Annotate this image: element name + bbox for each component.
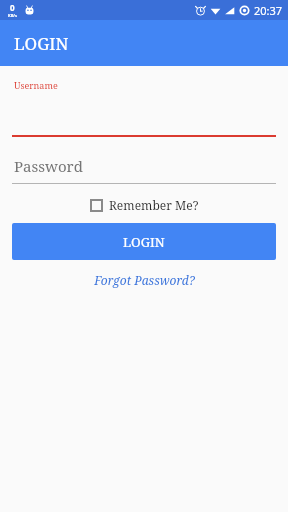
staticText: 20:37 [254,3,283,18]
staticText: Username [14,79,58,91]
staticText: Forgot Password? [94,272,195,288]
staticText: LOGIN [123,233,165,251]
staticText: LOGIN [14,32,69,55]
button[interactable]: Remember Me? [90,197,199,213]
button[interactable]: Forgot Password? [90,268,199,292]
button[interactable] [12,111,276,137]
button[interactable]: LOGIN [12,223,276,260]
staticText: Password [14,156,83,176]
staticText: KB/s [8,13,17,18]
staticText: Remember Me? [109,197,199,213]
button[interactable]: Password [12,156,276,184]
staticText: 0 [10,2,15,13]
